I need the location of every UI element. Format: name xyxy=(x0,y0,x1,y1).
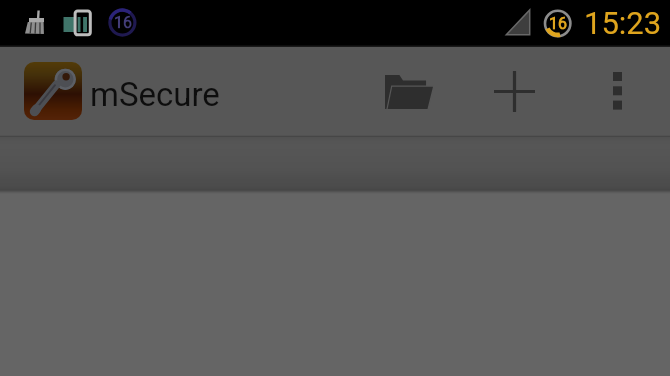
button[interactable]: Folders xyxy=(379,61,439,122)
button[interactable]: Add xyxy=(484,61,544,122)
button[interactable]: mSecure xyxy=(0,47,240,135)
staticText: 15:23 xyxy=(584,5,662,41)
staticText: 16 xyxy=(549,14,567,33)
button[interactable]: More options xyxy=(593,60,641,121)
staticText: mSecure xyxy=(90,75,220,114)
staticText: 16 xyxy=(114,13,132,32)
